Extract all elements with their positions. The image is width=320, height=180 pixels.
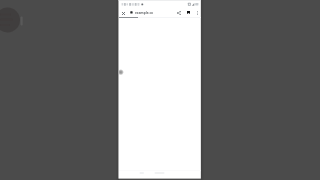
button[interactable]: Close: [119, 9, 128, 18]
button[interactable]: More options: [193, 8, 202, 17]
staticText: example.co: [135, 11, 154, 15]
button[interactable]: Share: [174, 8, 183, 17]
button[interactable]: Bookmark: [184, 8, 193, 17]
